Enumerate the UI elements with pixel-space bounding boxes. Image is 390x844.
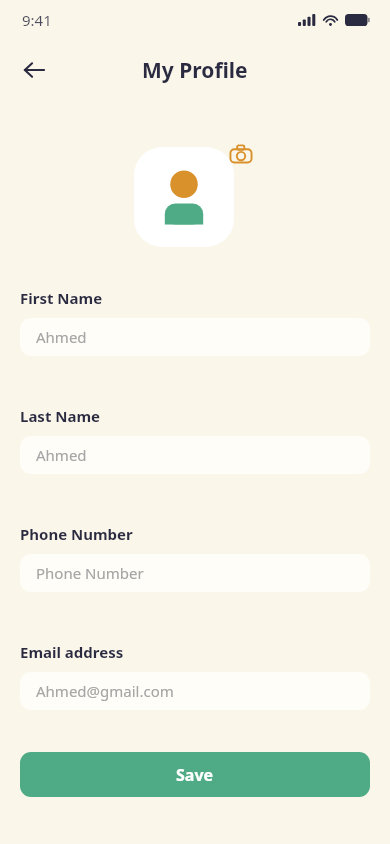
staticText: Phone Number (36, 563, 144, 583)
button[interactable]: Ahmed (20, 318, 370, 356)
staticText: Phone Number (20, 524, 133, 544)
button[interactable]: Profile photo (134, 147, 234, 247)
staticText: Email address (20, 642, 124, 662)
button[interactable]: Ahmed@gmail.com (20, 672, 370, 710)
staticText: Save (176, 764, 214, 786)
button[interactable]: Phone Number (20, 554, 370, 592)
button[interactable]: Change photo (223, 137, 259, 173)
staticText: Ahmed@gmail.com (36, 681, 174, 701)
staticText: First Name (20, 288, 103, 308)
staticText: Ahmed (36, 327, 87, 347)
staticText: My Profile (142, 56, 248, 85)
staticText: Last Name (20, 406, 101, 426)
button[interactable]: Save (20, 752, 370, 797)
staticText: 9:41 (22, 10, 52, 30)
button[interactable]: Back (12, 48, 56, 92)
staticText: Ahmed (36, 445, 87, 465)
button[interactable]: Ahmed (20, 436, 370, 474)
